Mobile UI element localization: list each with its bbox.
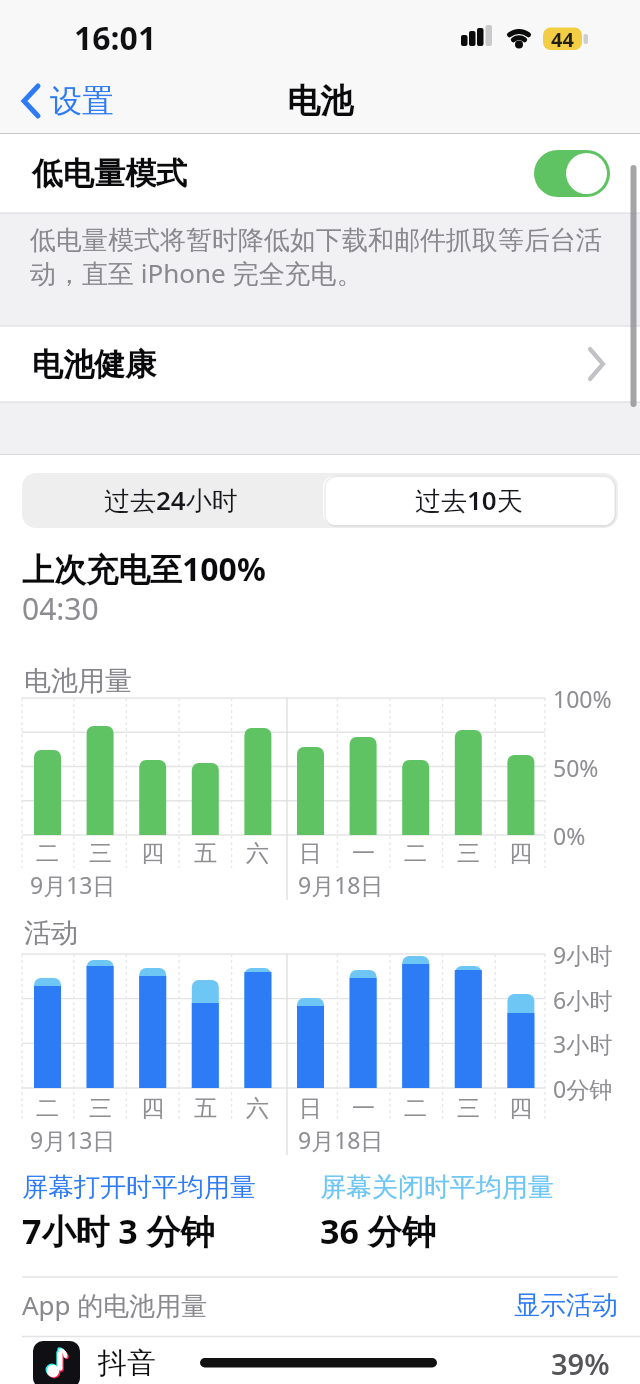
button[interactable] xyxy=(500,1288,620,1328)
staticText: 上次充电至100% xyxy=(22,547,266,591)
button[interactable] xyxy=(323,476,615,525)
staticText: 三 xyxy=(89,1094,112,1123)
staticText: 三 xyxy=(457,1094,480,1123)
staticText: 9小时 xyxy=(553,939,613,970)
staticText: 6小时 xyxy=(553,984,613,1015)
staticText: 四 xyxy=(141,839,164,868)
staticText: 动，直至 iPhone 完全充电。 xyxy=(30,255,363,291)
staticText: 39% xyxy=(551,1344,610,1383)
staticText: 显示活动 xyxy=(514,1289,618,1322)
staticText: 50% xyxy=(553,752,599,783)
staticText: 电池 xyxy=(287,80,353,122)
staticText: 一 xyxy=(352,839,375,868)
staticText: 四 xyxy=(509,1094,532,1123)
staticText: 低电量模式 xyxy=(32,154,187,193)
staticText: 二 xyxy=(404,839,427,868)
staticText: 9月18日 xyxy=(298,869,384,900)
staticText: 二 xyxy=(36,1094,59,1123)
staticText: 0分钟 xyxy=(553,1073,613,1104)
staticText: 9月13日 xyxy=(30,869,116,900)
staticText: 屏幕关闭时平均用量 xyxy=(320,1171,554,1204)
staticText: 电池健康 xyxy=(32,345,156,384)
staticText: 四 xyxy=(141,1094,164,1123)
staticText: 7小时 3 分钟 xyxy=(22,1208,215,1254)
staticText: 9月13日 xyxy=(30,1124,116,1155)
staticText: 日 xyxy=(299,1094,322,1123)
button[interactable] xyxy=(22,473,320,528)
staticText: 二 xyxy=(404,1094,427,1123)
staticText: 9月18日 xyxy=(298,1124,384,1155)
button[interactable] xyxy=(0,134,640,213)
staticText: 六 xyxy=(246,1094,269,1123)
button[interactable] xyxy=(0,326,640,402)
button[interactable] xyxy=(0,1337,640,1384)
staticText: 六 xyxy=(246,839,269,868)
staticText: 三 xyxy=(457,839,480,868)
staticText: 3小时 xyxy=(553,1028,613,1059)
staticText: 低电量模式将暂时降低如下载和邮件抓取等后台活 xyxy=(30,224,602,257)
staticText: 屏幕打开时平均用量 xyxy=(22,1171,256,1204)
staticText: 0% xyxy=(553,820,586,851)
staticText: 过去24小时 xyxy=(104,482,238,518)
staticText: 一 xyxy=(352,1094,375,1123)
staticText: 五 xyxy=(194,839,217,868)
staticText: 四 xyxy=(509,839,532,868)
button[interactable] xyxy=(14,78,144,124)
staticText: 日 xyxy=(299,839,322,868)
staticText: 过去10天 xyxy=(415,482,523,518)
staticText: 活动 xyxy=(24,916,78,950)
staticText: 36 分钟 xyxy=(320,1208,436,1254)
button[interactable] xyxy=(534,150,610,197)
staticText: App 的电池用量 xyxy=(22,1287,208,1323)
staticText: 设置 xyxy=(50,81,114,121)
staticText: 抖音 xyxy=(98,1345,156,1382)
staticText: 三 xyxy=(89,839,112,868)
staticText: 五 xyxy=(194,1094,217,1123)
staticText: 44 xyxy=(551,26,574,53)
staticText: 04:30 xyxy=(22,588,99,629)
staticText: 电池用量 xyxy=(24,664,132,698)
staticText: 100% xyxy=(553,683,612,714)
staticText: 二 xyxy=(36,839,59,868)
staticText: 16:01 xyxy=(74,16,157,60)
